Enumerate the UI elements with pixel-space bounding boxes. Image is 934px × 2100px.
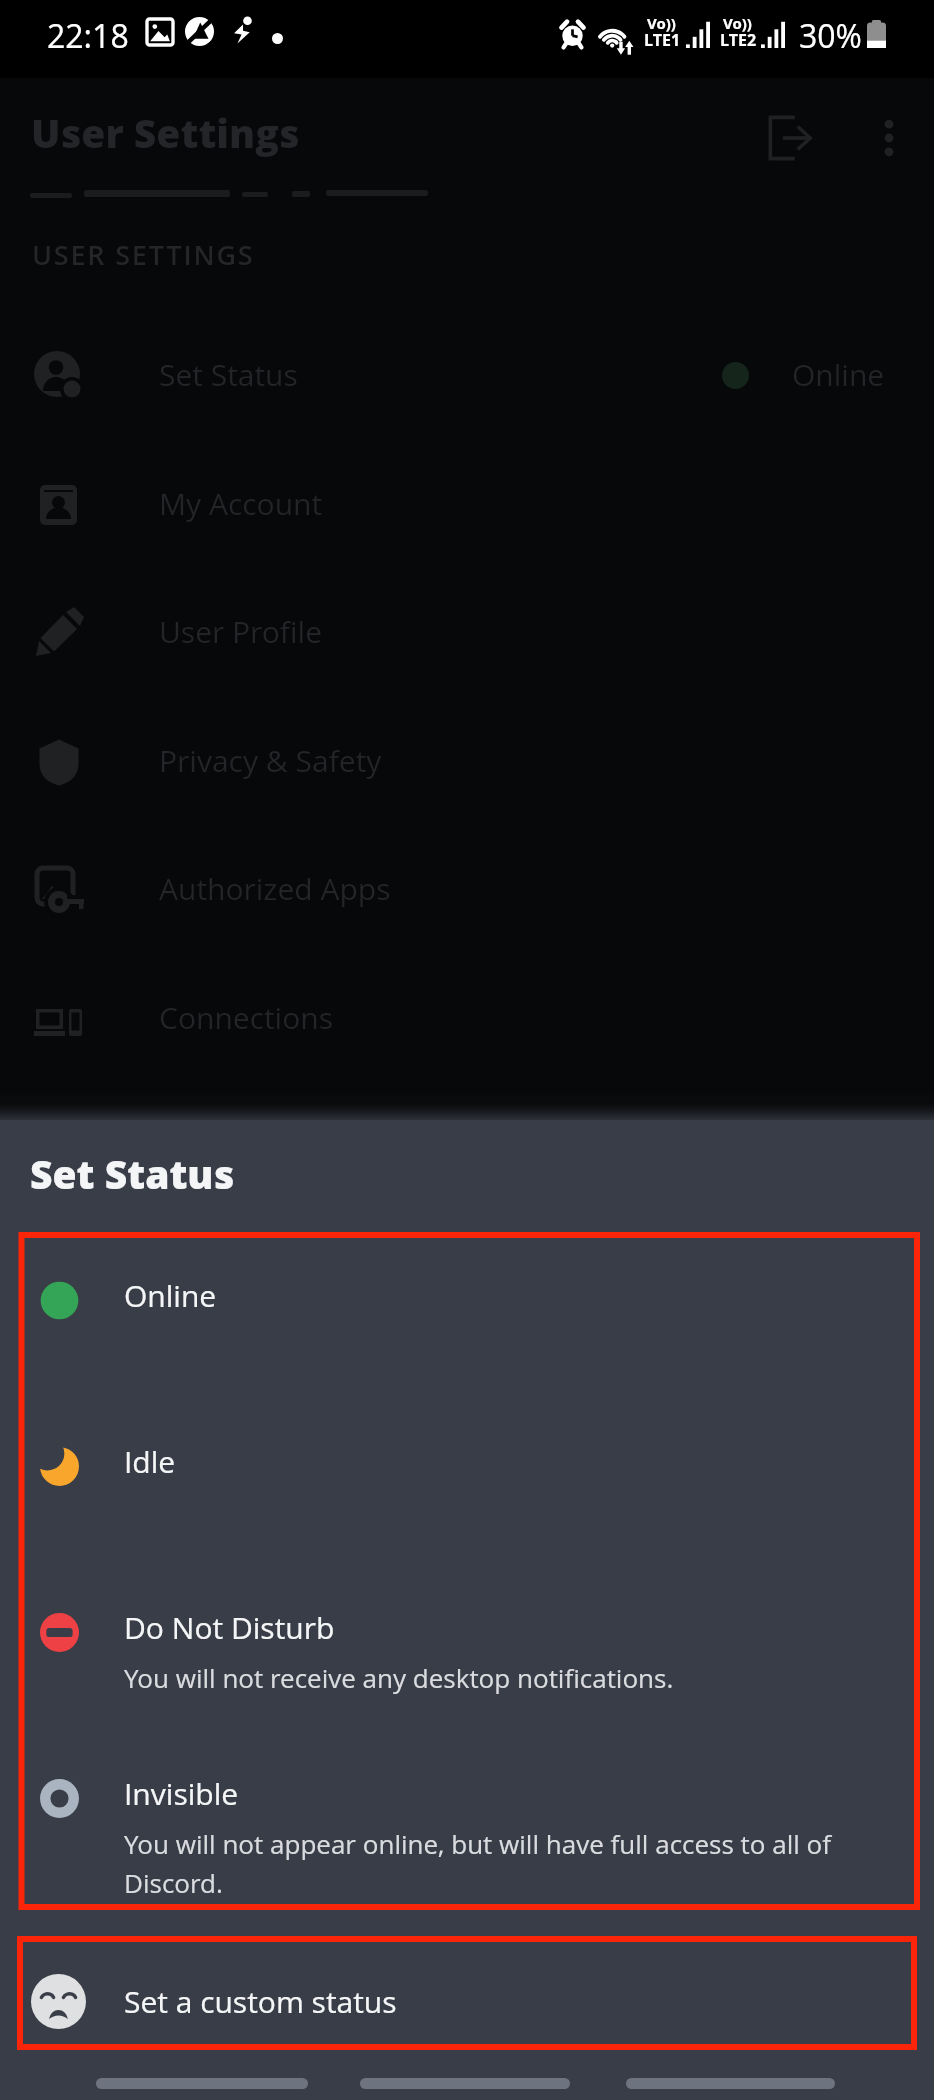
staticText: User Profile (159, 611, 323, 652)
button[interactable]: Set Status (0, 311, 934, 439)
button[interactable]: User Profile (0, 568, 934, 696)
button[interactable]: My Account (0, 440, 934, 568)
staticText: USER SETTINGS (32, 236, 255, 273)
button[interactable]: Idle (22, 1412, 916, 1578)
staticText: LTE2 (720, 29, 757, 51)
staticText: Connections (159, 997, 334, 1038)
button[interactable]: Privacy & Safety (0, 697, 934, 825)
staticText: User Settings (31, 106, 300, 159)
button[interactable]: Back (626, 2078, 835, 2089)
staticText: Idle (124, 1441, 176, 1482)
staticText: Set Status (30, 1147, 235, 1200)
staticText: My Account (159, 483, 323, 524)
button[interactable]: Log out (745, 92, 837, 184)
button[interactable]: Online (22, 1246, 916, 1412)
staticText: Vo)) (723, 13, 752, 33)
staticText: Set Status (159, 354, 298, 395)
staticText: You will not receive any desktop notific… (124, 1660, 674, 1695)
button[interactable]: Invisible (22, 1744, 916, 1910)
staticText: Online (792, 354, 885, 395)
button[interactable]: More options (843, 92, 934, 184)
staticText: Invisible (124, 1773, 239, 1814)
staticText: Privacy & Safety (159, 740, 382, 781)
staticText: You will not appear online, but will hav… (124, 1826, 849, 1900)
staticText: Do Not Disturb (124, 1607, 335, 1648)
staticText: Set a custom status (124, 1981, 397, 2022)
button[interactable]: Home (360, 2078, 570, 2089)
button[interactable]: Authorized Apps (0, 825, 934, 953)
staticText: 30% (799, 14, 862, 58)
staticText: Vo)) (647, 13, 676, 33)
staticText: Online (124, 1275, 217, 1316)
staticText: Authorized Apps (159, 868, 391, 909)
staticText: 22:18 (47, 14, 129, 58)
staticText: LTE1 (644, 29, 681, 51)
button[interactable]: Set a custom status (17, 1936, 917, 2050)
button[interactable]: Do Not Disturb (22, 1578, 916, 1744)
button[interactable]: Recent apps (96, 2078, 308, 2089)
